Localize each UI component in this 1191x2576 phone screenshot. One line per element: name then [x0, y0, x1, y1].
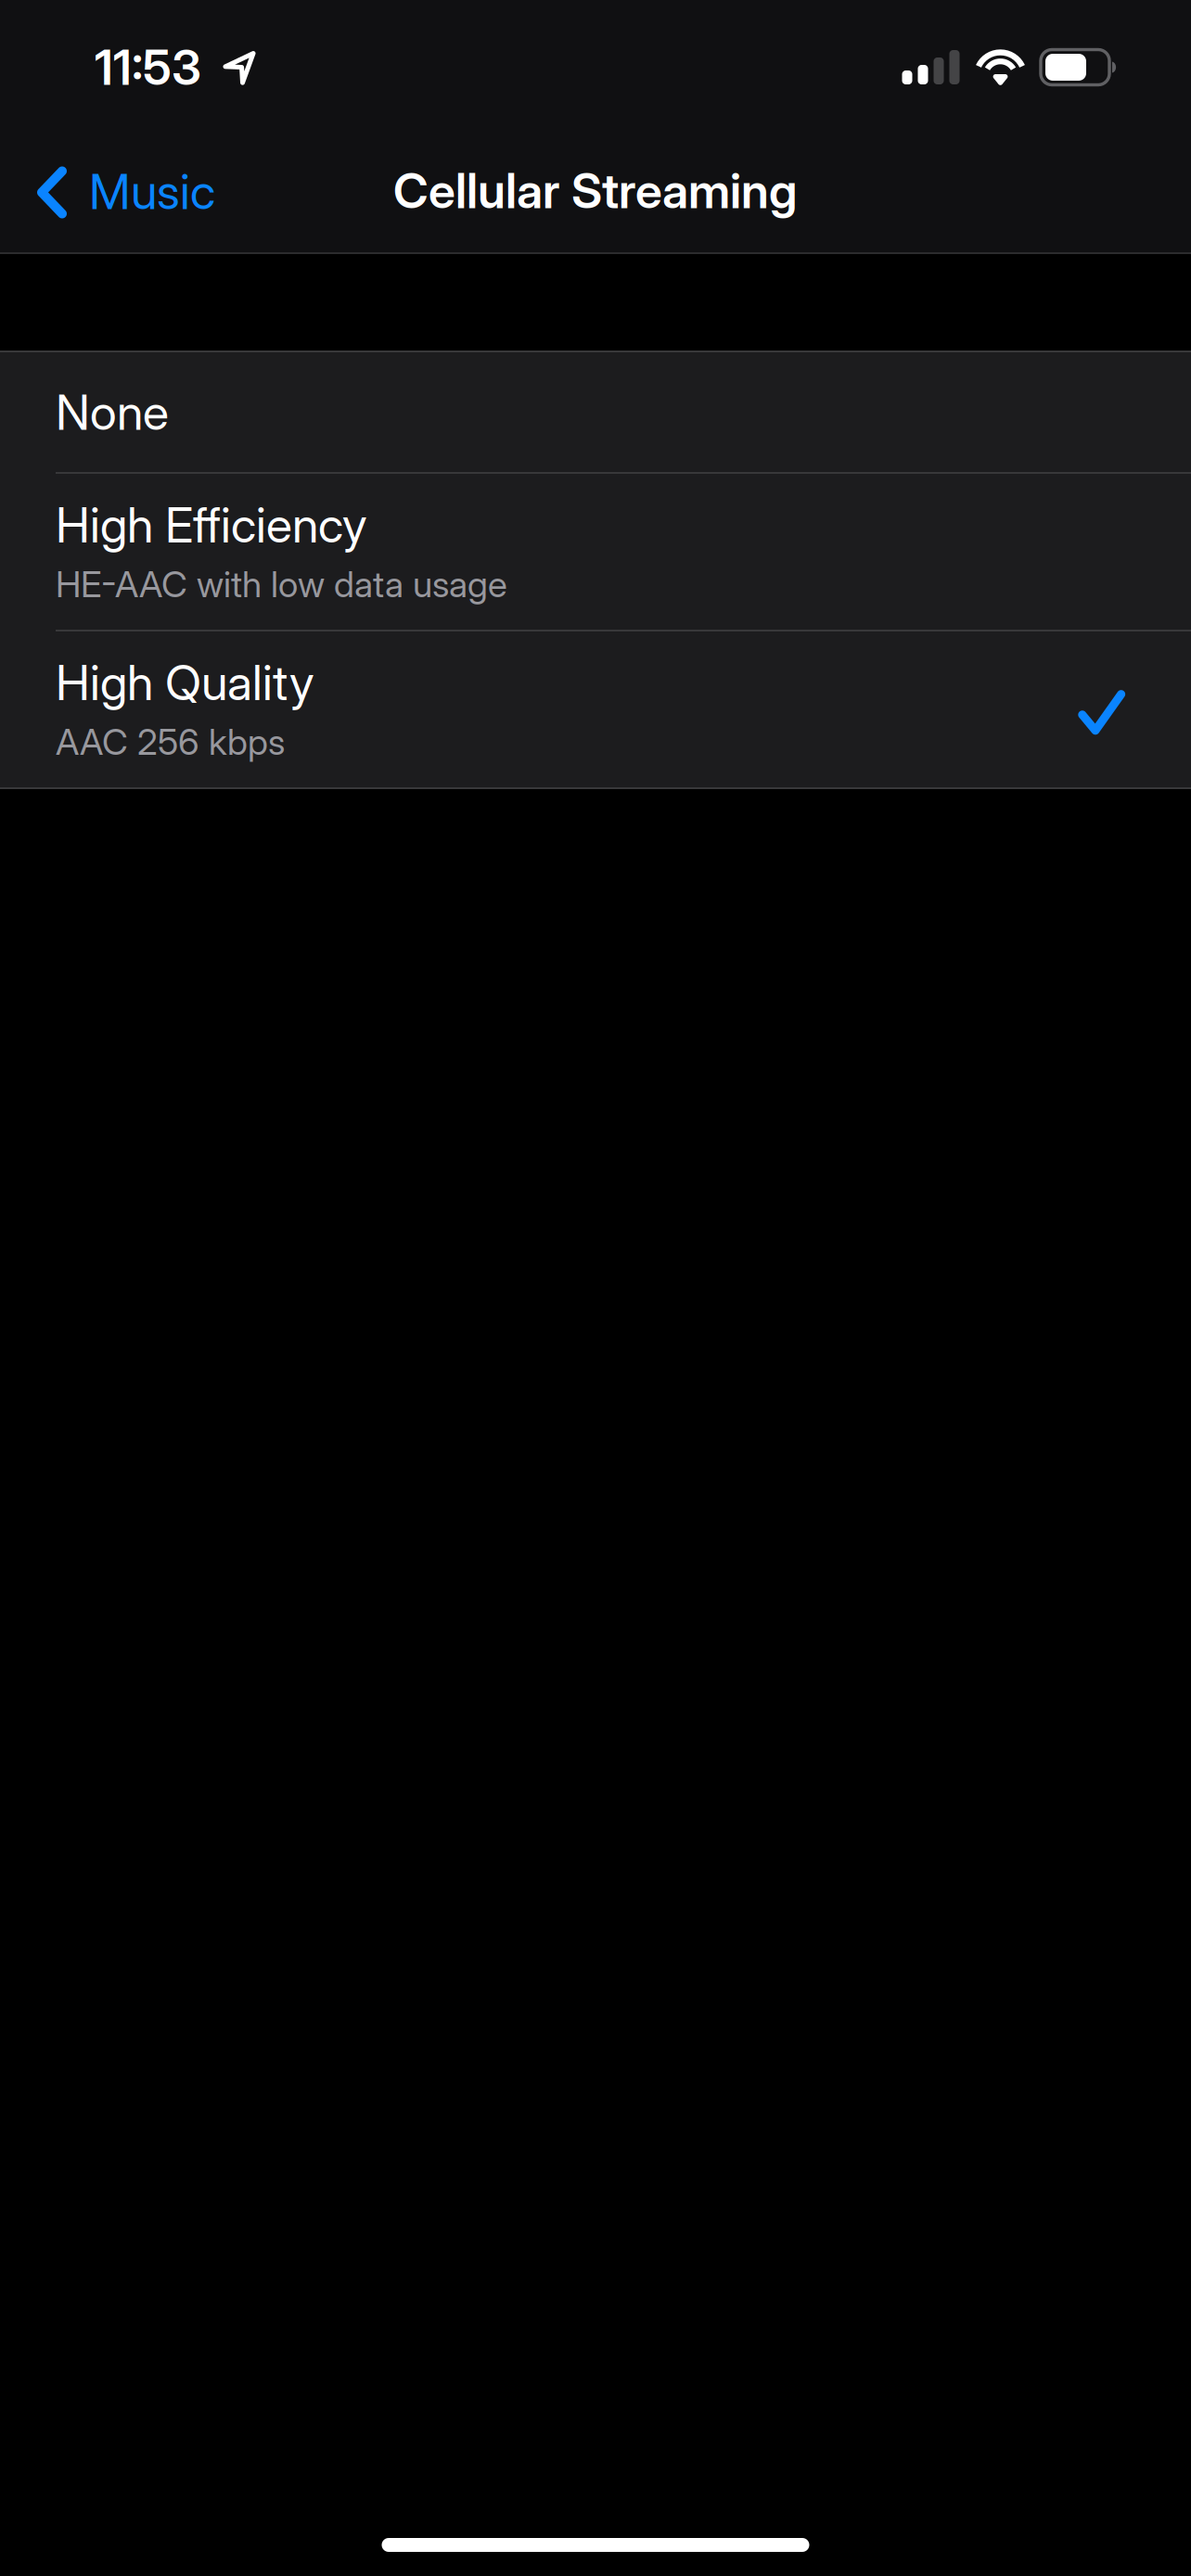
staticText: Cellular Streaming [393, 161, 798, 220]
staticText: High Efficiency [56, 496, 367, 554]
button[interactable]: None [0, 352, 1191, 472]
staticText: HE-AAC with low data usage [56, 562, 507, 606]
staticText: 11:53 [95, 38, 201, 96]
button[interactable]: High Quality [0, 631, 1191, 787]
button[interactable]: High Efficiency [0, 474, 1191, 630]
staticText: High Quality [56, 653, 314, 712]
staticText: None [56, 383, 169, 441]
staticText: AAC 256 kbps [56, 720, 285, 764]
staticText: Music [89, 162, 215, 221]
button[interactable]: Back to Music [0, 146, 237, 241]
